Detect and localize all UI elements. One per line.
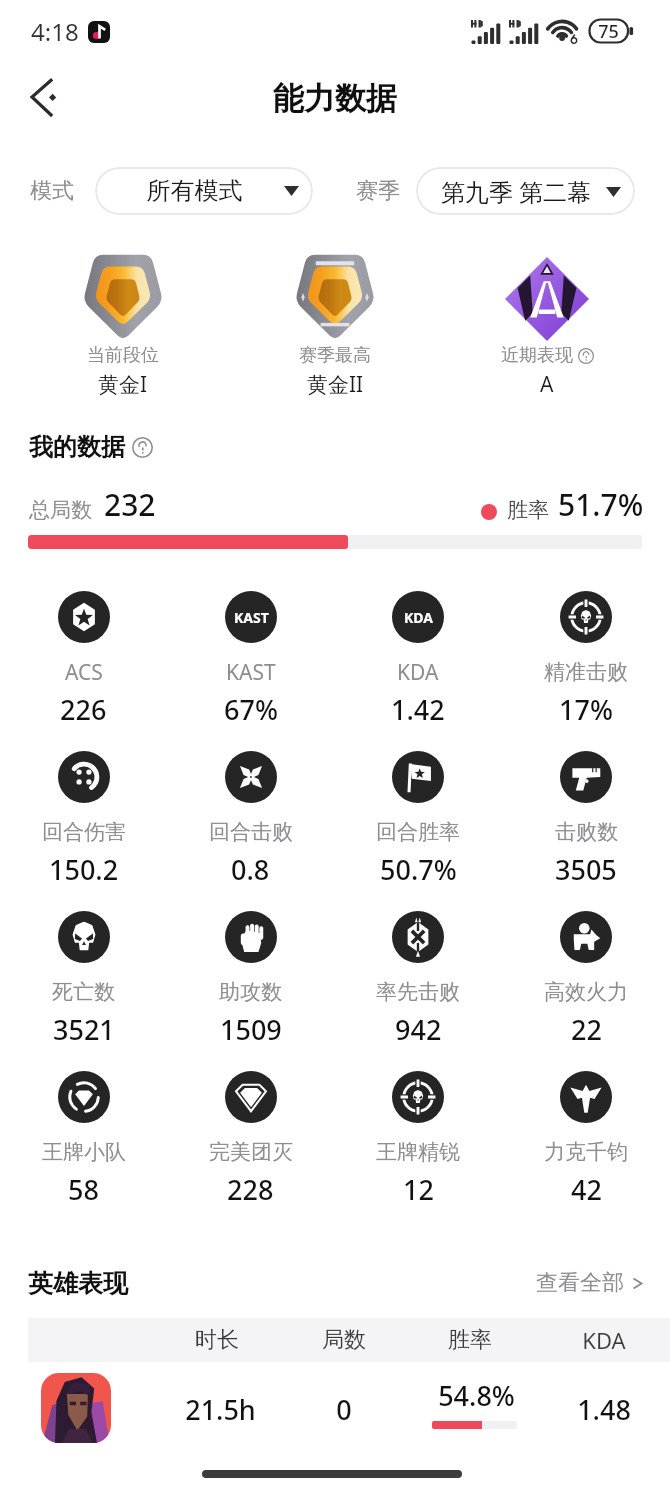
staticText: 能力数据 [273, 79, 397, 118]
staticText: 时长 [195, 1326, 239, 1354]
staticText: 1.42 [391, 691, 445, 727]
button[interactable]: 王牌精锐 [334, 1071, 502, 1231]
button[interactable]: 回合击败 [167, 751, 334, 911]
button[interactable]: 率先击败 [334, 911, 502, 1071]
button[interactable]: 查看全部 [536, 1263, 644, 1303]
staticText: 54.8% [438, 1377, 515, 1414]
staticText: 75 [589, 19, 628, 44]
staticText: KDA [582, 1325, 626, 1355]
staticText: 死亡数 [52, 979, 115, 1005]
staticText: 3505 [555, 851, 617, 887]
staticText: 942 [395, 1011, 442, 1047]
staticText: 回合击败 [209, 819, 293, 845]
staticText: 226 [60, 691, 107, 727]
button[interactable]: KDA [334, 591, 502, 751]
staticText: 精准击败 [544, 659, 628, 685]
staticText: 查看全部 [536, 1269, 624, 1297]
button[interactable]: 王牌小队 [0, 1071, 167, 1231]
staticText: 58 [68, 1171, 99, 1207]
staticText: KDA [404, 608, 433, 627]
staticText: 高效火力 [544, 979, 628, 1005]
staticText: 王牌小队 [42, 1139, 126, 1165]
button[interactable]: 回合伤害 [0, 751, 167, 911]
button[interactable]: KAST [167, 591, 334, 751]
button[interactable]: 回合胜率 [334, 751, 502, 911]
staticText: 模式 [30, 177, 74, 205]
staticText: 67% [224, 691, 278, 727]
staticText: 近期表现 [501, 344, 573, 367]
staticText: 17% [559, 691, 613, 727]
staticText: 局数 [322, 1326, 366, 1354]
button[interactable]: 第九季 第二幕 [416, 167, 635, 215]
button[interactable]: 当前段位 [17, 240, 229, 406]
staticText: 4:18 [31, 15, 79, 48]
staticText: 第九季 第二幕 [426, 175, 606, 208]
button[interactable]: 力克千钧 [502, 1071, 670, 1231]
staticText: 1.48 [577, 1391, 631, 1428]
staticText: 助攻数 [219, 979, 282, 1005]
staticText: KAST [226, 658, 276, 687]
staticText: 232 [104, 484, 156, 525]
button[interactable]: 高效火力 [502, 911, 670, 1071]
button[interactable]: 助攻数 [167, 911, 334, 1071]
staticText: 击败数 [555, 819, 618, 845]
button[interactable]: 击败数 [502, 751, 670, 911]
staticText: KDA [397, 658, 439, 687]
staticText: 英雄表现 [28, 1268, 128, 1299]
staticText: 胜率 [507, 497, 549, 523]
staticText: 1509 [220, 1011, 282, 1047]
staticText: 赛季 [356, 177, 400, 205]
staticText: 黄金II [307, 370, 364, 399]
staticText: 当前段位 [87, 344, 159, 367]
staticText: 21.5h [185, 1391, 256, 1428]
staticText: 王牌精锐 [376, 1139, 460, 1165]
staticText: 50.7% [380, 851, 457, 887]
staticText: 所有模式 [105, 176, 284, 206]
staticText: 率先击败 [376, 979, 460, 1005]
staticText: 228 [227, 1171, 274, 1207]
button[interactable]: Back [22, 70, 78, 126]
button[interactable]: 所有模式 [95, 167, 313, 215]
button[interactable]: 近期表现 [441, 240, 653, 406]
staticText: 51.7% [558, 484, 644, 525]
button[interactable]: 21.5h [0, 1373, 670, 1445]
button[interactable]: 赛季最高 [229, 240, 441, 406]
staticText: 3521 [53, 1011, 115, 1047]
staticText: 赛季最高 [299, 344, 371, 367]
staticText: 150.2 [49, 851, 119, 887]
staticText: 完美团灭 [209, 1139, 293, 1165]
staticText: 我的数据 [29, 432, 125, 462]
staticText: KAST [234, 608, 269, 627]
button[interactable]: 完美团灭 [167, 1071, 334, 1231]
staticText: 胜率 [448, 1326, 492, 1354]
staticText: 回合胜率 [376, 819, 460, 845]
staticText: 力克千钧 [544, 1139, 628, 1165]
button[interactable]: 精准击败 [502, 591, 670, 751]
button[interactable]: ACS [0, 591, 167, 751]
staticText: 0 [336, 1391, 352, 1428]
staticText: 0.8 [231, 851, 270, 887]
staticText: 回合伤害 [42, 819, 126, 845]
staticText: 22 [571, 1011, 602, 1047]
staticText: 黄金I [98, 370, 148, 399]
staticText: 总局数 [29, 497, 92, 523]
staticText: ACS [65, 658, 103, 687]
staticText: A [540, 370, 554, 399]
staticText: 12 [403, 1171, 434, 1207]
button[interactable]: 死亡数 [0, 911, 167, 1071]
staticText: 42 [571, 1171, 602, 1207]
